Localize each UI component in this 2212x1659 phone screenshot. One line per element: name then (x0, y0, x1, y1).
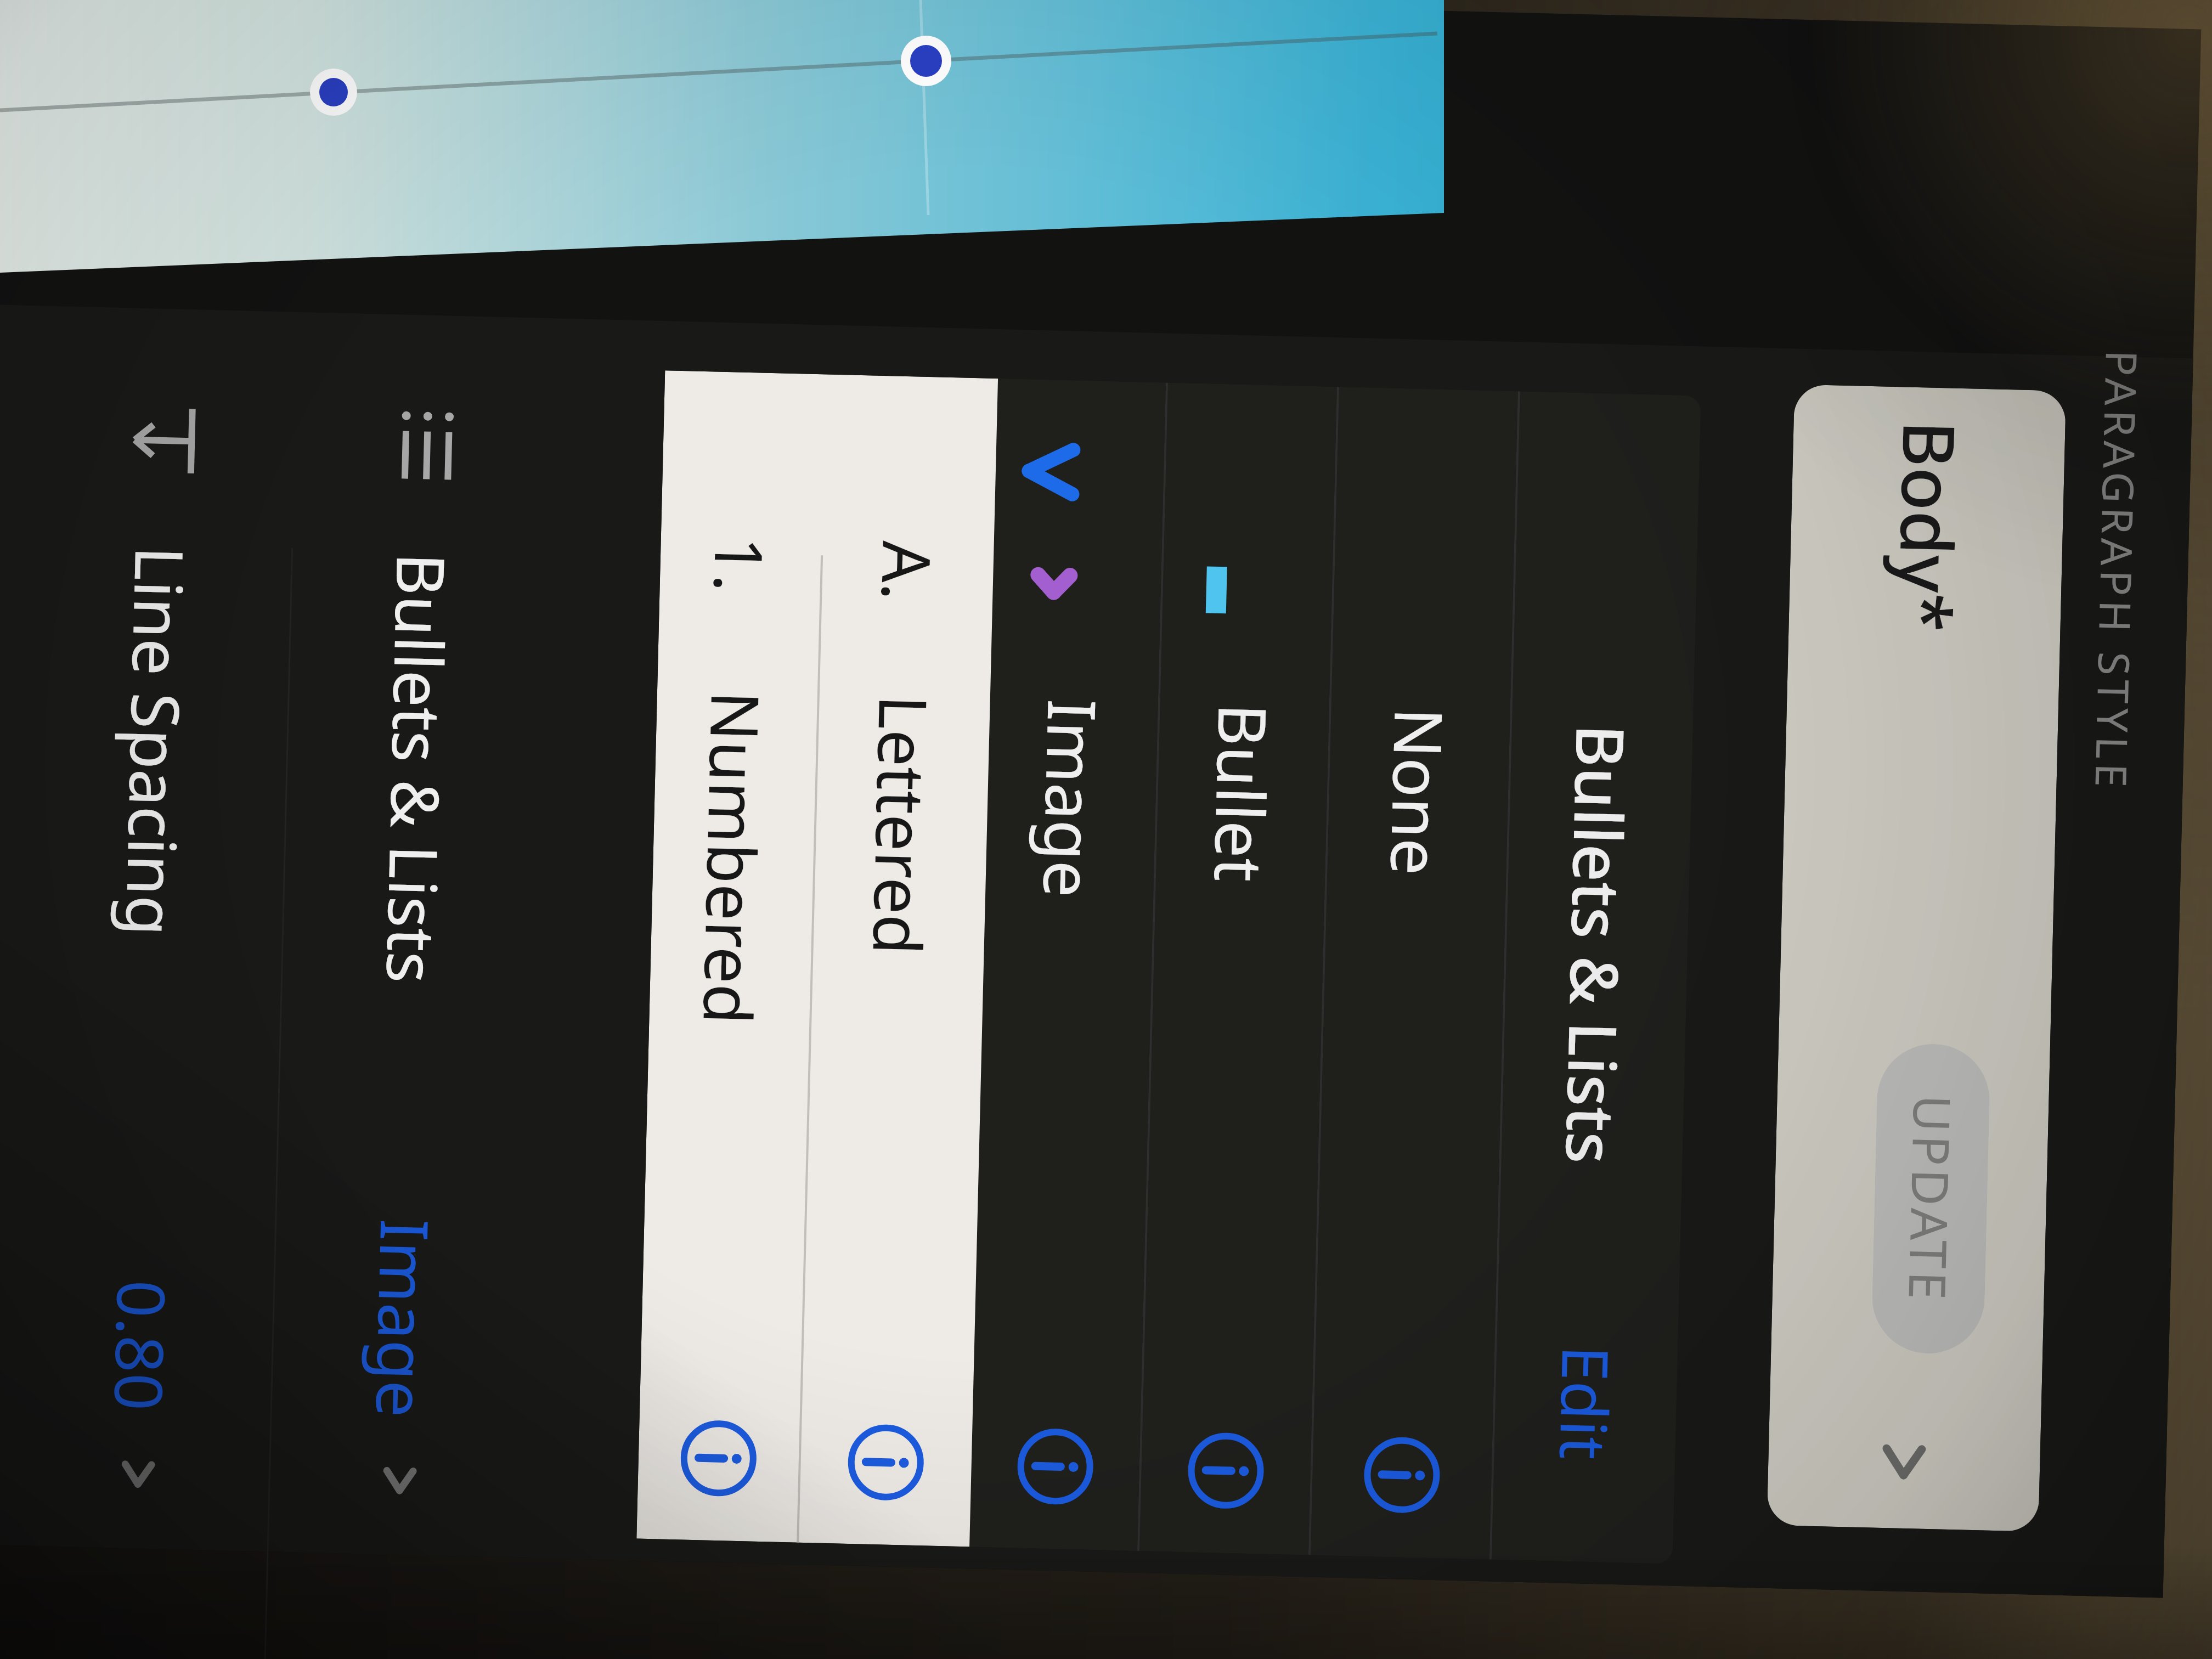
staticText: Bullet (1195, 702, 1289, 883)
staticText: Body* (1878, 419, 1980, 633)
staticText: Line Spacing (107, 545, 206, 937)
staticText: Lettered (854, 694, 950, 956)
button[interactable]: Edit (1519, 1332, 1653, 1473)
button[interactable]: Info (1002, 1413, 1109, 1520)
staticText: 0.80 (95, 1279, 188, 1412)
button[interactable]: Image (969, 379, 1166, 1551)
staticText: UPDATE (1894, 1094, 1968, 1304)
staticText: None (1372, 707, 1465, 877)
staticText: Image (1024, 698, 1119, 899)
staticText: PARAGRAPH STYLE (2083, 349, 2152, 792)
button[interactable]: None (1311, 387, 1518, 1559)
staticText: Bullets & Lists (368, 552, 467, 984)
button[interactable]: Body* (1767, 384, 2066, 1532)
staticText: Bullets & Lists (1547, 723, 1647, 1165)
staticText: A. (863, 540, 953, 602)
button[interactable]: Info (1173, 1417, 1279, 1524)
button[interactable]: Info (665, 1405, 772, 1512)
button[interactable]: Bullets & Lists (268, 312, 559, 1558)
button[interactable]: Line Spacing (7, 306, 297, 1552)
staticText: Numbered (684, 690, 782, 1026)
button[interactable]: A. (799, 374, 998, 1547)
staticText: Edit (1541, 1345, 1631, 1461)
button[interactable]: 1. (636, 370, 825, 1543)
staticText: 1. (695, 536, 786, 593)
button[interactable]: Info (1349, 1422, 1455, 1528)
button[interactable]: Bullet (1139, 383, 1337, 1555)
button[interactable]: UPDATE (1871, 1043, 1991, 1355)
button[interactable]: Info (833, 1409, 939, 1516)
staticText: Image (357, 1218, 451, 1419)
button[interactable]: Choose paragraph style (1848, 1406, 1960, 1518)
